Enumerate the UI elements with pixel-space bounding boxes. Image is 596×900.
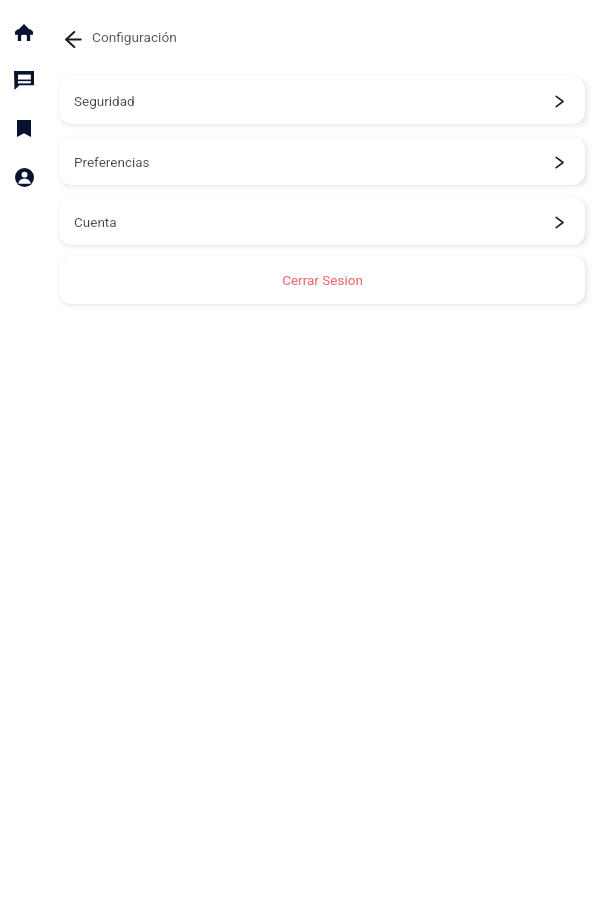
staticText: Cerrar Sesion: [282, 272, 363, 288]
button[interactable]: Back: [56, 23, 89, 55]
button[interactable]: Home: [6, 15, 42, 50]
button[interactable]: Account: [6, 159, 43, 196]
staticText: Seguridad: [74, 93, 135, 109]
button[interactable]: Messages: [5, 62, 43, 99]
staticText: Configuración: [92, 29, 177, 45]
button[interactable]: Bookmarks: [8, 111, 40, 146]
button[interactable]: Seguridad: [59, 76, 585, 124]
button[interactable]: Preferencias: [59, 137, 585, 185]
staticText: Cuenta: [74, 214, 117, 230]
button[interactable]: Cerrar Sesion: [59, 256, 585, 304]
button[interactable]: Cuenta: [59, 197, 585, 245]
staticText: Preferencias: [74, 154, 150, 170]
